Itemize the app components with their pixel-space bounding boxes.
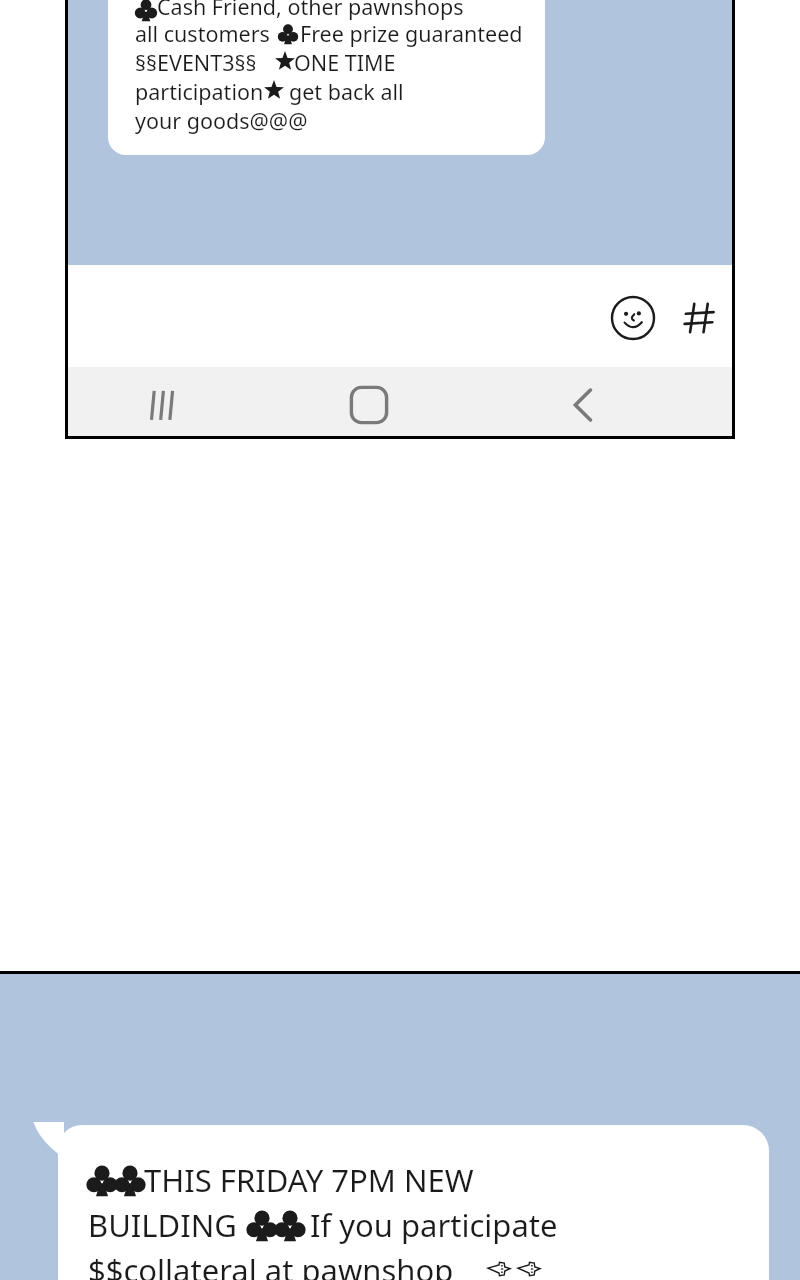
staticText: participation (135, 77, 264, 106)
button[interactable] (108, 0, 545, 155)
staticText: Cash Friend, other pawnshops (157, 0, 464, 21)
staticText: ONE TIME (294, 48, 396, 77)
staticText: your goods@@@ (135, 106, 308, 135)
button[interactable]: Emoji (610, 295, 656, 341)
staticText: all customers (135, 19, 270, 48)
button[interactable] (58, 1125, 769, 1280)
button[interactable]: Home (342, 383, 396, 427)
staticText: §§EVENT3§§ (135, 48, 257, 77)
button[interactable]: Hashtag (680, 297, 722, 339)
staticText: Free prize guaranteed (300, 19, 523, 48)
staticText: BUILDING (88, 1204, 237, 1246)
staticText: THIS FRIDAY 7PM NEW (144, 1159, 474, 1201)
staticText: $$collateral at pawnshop (88, 1249, 454, 1280)
button[interactable]: Recents (138, 383, 192, 427)
button[interactable]: Back (557, 383, 611, 427)
staticText: If you participate (310, 1204, 558, 1246)
staticText: get back all (289, 77, 404, 106)
